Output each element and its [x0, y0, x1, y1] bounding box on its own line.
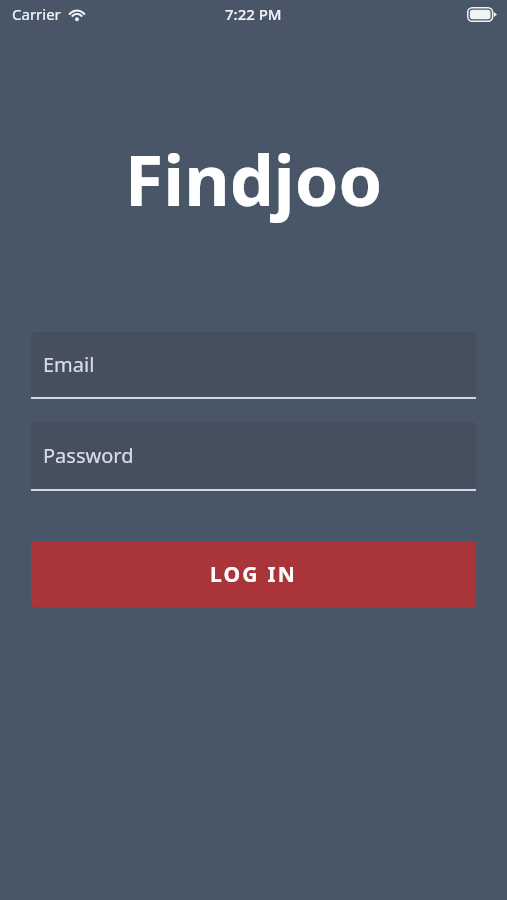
staticText: Findjoo: [0, 131, 507, 226]
button[interactable]: LOG IN: [31, 541, 476, 607]
staticText: Email: [43, 351, 95, 378]
button[interactable]: Email: [31, 332, 476, 399]
button[interactable]: Password: [31, 422, 476, 491]
staticText: 7:22 PM: [225, 4, 282, 24]
staticText: Carrier: [12, 4, 61, 24]
staticText: LOG IN: [210, 560, 298, 589]
staticText: Password: [43, 442, 134, 469]
